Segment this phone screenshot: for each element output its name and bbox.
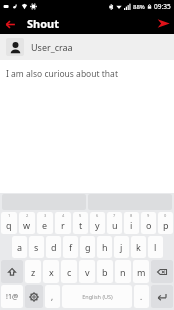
button[interactable]: s [29,236,44,258]
staticText: 1 [8,213,11,218]
staticText: l [154,241,157,253]
button[interactable]: z [25,260,41,283]
button[interactable]: English (US) [62,285,132,308]
staticText: m [137,266,146,278]
staticText: 3 [44,213,47,218]
button[interactable]: 7 [107,212,122,234]
staticText: 88% [133,3,145,11]
staticText: 09:35 [154,2,171,11]
staticText: p [163,219,169,231]
staticText: 6 [96,213,99,218]
button[interactable]: m [133,260,149,283]
button[interactable]: d [46,236,61,258]
button[interactable]: j [114,236,129,258]
staticText: g [85,241,91,253]
button[interactable]: Send [152,13,174,34]
button[interactable]: 8 [124,212,139,234]
staticText: User_craa [31,41,73,53]
button[interactable]: 4 [55,212,71,234]
staticText: 7 [113,213,116,218]
button[interactable]: l [148,236,163,258]
button[interactable]: 1 [1,212,17,234]
button[interactable]: k [131,236,146,258]
button[interactable]: !1@ [1,285,23,308]
staticText: . [140,291,143,302]
staticText: k [136,241,141,253]
staticText: w [23,219,31,231]
staticText: c [67,266,72,278]
button[interactable]: 2 [19,212,35,234]
staticText: i [130,219,133,231]
staticText: 2 [26,213,29,218]
button[interactable]: x [43,260,59,283]
staticText: q [6,219,12,231]
button[interactable]: . [134,285,149,308]
button[interactable]: v [79,260,95,283]
staticText: 9 [147,213,150,218]
staticText: j [120,241,123,253]
button[interactable]: Enter [151,285,173,308]
button[interactable]: g [80,236,95,258]
button[interactable]: Keyboard settings [25,285,43,308]
button[interactable]: 3 [37,212,53,234]
staticText: 0 [164,213,167,218]
staticText: s [34,241,39,253]
staticText: o [146,219,152,231]
button[interactable]: n [115,260,131,283]
staticText: n [120,266,126,278]
staticText: English (US) [82,293,113,300]
button[interactable]: h [97,236,112,258]
staticText: x [49,266,54,278]
button[interactable]: 0 [158,212,173,234]
button[interactable]: b [97,260,113,283]
button[interactable]: User_craa [0,34,174,60]
staticText: d [51,241,57,253]
staticText: b [102,266,108,278]
button[interactable]: Backspace [151,260,173,283]
staticText: 4 [62,213,65,218]
staticText: 5 [79,213,82,218]
staticText: e [42,219,48,231]
button[interactable]: Back [0,14,20,34]
staticText: u [112,219,118,231]
button[interactable]: , [45,285,60,308]
staticText: , [51,291,54,302]
button[interactable]: c [61,260,77,283]
staticText: y [95,219,100,231]
staticText: h [102,241,108,253]
button[interactable]: a [12,236,27,258]
staticText: r [61,219,65,231]
staticText: I am also curious about that [6,68,118,80]
button[interactable]: Shift [1,260,23,283]
button[interactable]: 5 [73,212,88,234]
staticText: Shout [27,16,60,31]
staticText: 8 [130,213,133,218]
staticText: t [79,219,83,231]
button[interactable]: f [63,236,78,258]
staticText: v [85,266,90,278]
button[interactable]: 6 [90,212,105,234]
staticText: z [31,266,36,278]
staticText: a [17,241,23,253]
staticText: !1@ [6,292,19,302]
button[interactable]: 9 [141,212,156,234]
staticText: f [69,241,73,253]
